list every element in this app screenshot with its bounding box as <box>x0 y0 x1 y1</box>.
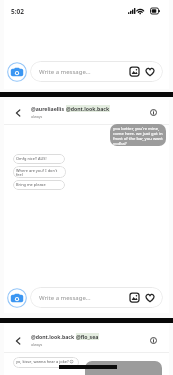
button[interactable]: Where are you? I don't feel well <box>13 166 66 178</box>
staticText: always <box>31 342 43 347</box>
staticText: 5:02 <box>11 7 24 16</box>
button[interactable]: Conversation details <box>147 334 159 346</box>
button[interactable]: Send photo <box>130 293 139 302</box>
staticText: Omfg nice!! AUS! <box>16 156 47 161</box>
staticText: @dont.look.back <box>31 333 76 340</box>
staticText: @dont.look.back <box>66 105 110 112</box>
button[interactable]: Open camera <box>7 62 27 82</box>
button[interactable]: Back <box>12 107 23 118</box>
button[interactable]: Send like <box>145 293 155 303</box>
staticText: @aureliaellis <box>31 105 66 112</box>
staticText: you better, you're mine, come here. we j… <box>113 126 163 145</box>
staticText: yo, kisse, wanna hear a joke? 😊 <box>16 359 74 364</box>
button[interactable]: Send photo <box>130 67 139 76</box>
button[interactable]: Conversation details <box>147 106 159 118</box>
staticText: @flo_sea <box>76 333 99 340</box>
button[interactable]: Bring me please <box>13 180 65 190</box>
button[interactable]: you better, you're mine, come here. we j… <box>110 124 166 146</box>
staticText: always <box>31 114 43 119</box>
button[interactable]: Send like <box>145 67 155 77</box>
button[interactable] <box>85 361 162 375</box>
staticText: Where are you? I don't feel well <box>16 168 64 177</box>
button[interactable]: Back <box>12 335 23 346</box>
staticText: Write a message... <box>39 294 91 302</box>
staticText: Write a message... <box>39 68 91 76</box>
button[interactable]: Omfg nice!! AUS! <box>13 154 65 164</box>
button[interactable]: Write a message... <box>30 287 163 308</box>
button[interactable]: yo, kisse, wanna hear a joke? 😊 <box>13 357 79 368</box>
staticText: Bring me please <box>16 182 46 187</box>
button[interactable]: Write a message... <box>30 61 163 82</box>
button[interactable]: Open camera <box>7 288 27 308</box>
